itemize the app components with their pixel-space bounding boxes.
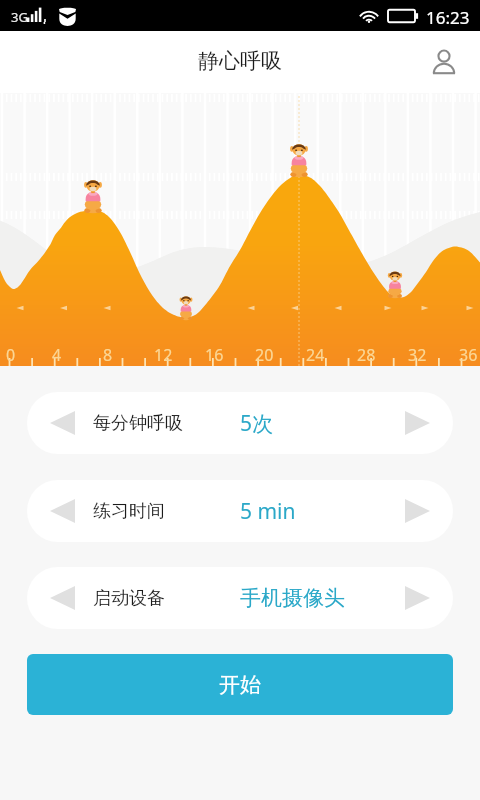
staticText: 启动设备 — [93, 587, 165, 610]
button[interactable]: 开始 — [27, 654, 453, 715]
staticText: 20 — [255, 344, 274, 366]
staticText: 16:23 — [426, 6, 470, 29]
staticText: 5次 — [240, 409, 274, 438]
staticText: 16 — [205, 344, 224, 366]
staticText: 8 — [103, 344, 113, 366]
staticText: 每分钟呼吸 — [93, 412, 183, 435]
staticText: 0 — [6, 344, 16, 366]
staticText: 练习时间 — [93, 500, 165, 523]
staticText: 4 — [52, 344, 62, 366]
button[interactable]: Profile — [422, 40, 466, 84]
staticText: 12 — [154, 344, 173, 366]
staticText: 开始 — [219, 672, 261, 698]
staticText: 28 — [357, 344, 376, 366]
staticText: 24 — [306, 344, 325, 366]
staticText: 5 min — [240, 497, 296, 526]
staticText: 静心呼吸 — [198, 48, 282, 74]
button[interactable]: 启动设备 — [27, 567, 453, 629]
staticText: 36 — [459, 344, 478, 366]
button[interactable]: 练习时间 — [27, 480, 453, 542]
button[interactable]: 每分钟呼吸 — [27, 392, 453, 454]
staticText: 手机摄像头 — [240, 585, 345, 611]
staticText: 3G — [11, 8, 28, 26]
staticText: 32 — [408, 344, 427, 366]
